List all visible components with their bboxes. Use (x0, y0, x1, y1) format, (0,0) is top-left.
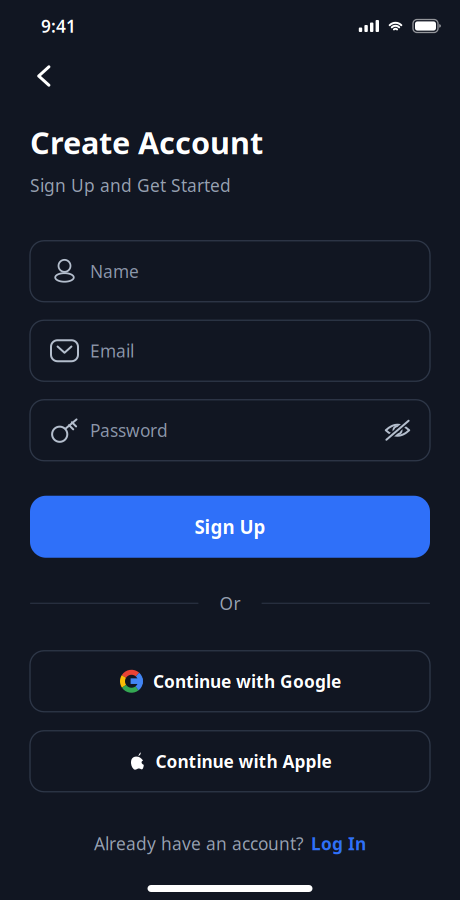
staticText: Name (90, 260, 139, 283)
button[interactable]: Email (30, 320, 430, 381)
button[interactable]: Continue with Google (30, 651, 430, 712)
staticText: Already have an account? (94, 832, 304, 855)
staticText: Create Account (30, 122, 263, 163)
staticText: 9:41 (41, 14, 76, 37)
staticText: Log In (311, 832, 366, 855)
button[interactable]: Back (0, 59, 68, 93)
button[interactable]: Name (30, 241, 430, 302)
staticText: Continue with Google (153, 670, 341, 693)
button[interactable]: Password (30, 400, 430, 461)
staticText: Email (90, 339, 134, 362)
button[interactable]: Continue with Apple (30, 731, 430, 792)
button[interactable]: Already have an account? (0, 832, 460, 855)
staticText: Sign Up and Get Started (30, 174, 231, 197)
staticText: Continue with Apple (155, 750, 331, 773)
staticText: Sign Up (194, 514, 265, 539)
button[interactable]: Sign Up (30, 496, 430, 558)
staticText: Password (90, 419, 168, 442)
staticText: Or (219, 592, 240, 615)
button[interactable]: Show password (385, 419, 410, 441)
